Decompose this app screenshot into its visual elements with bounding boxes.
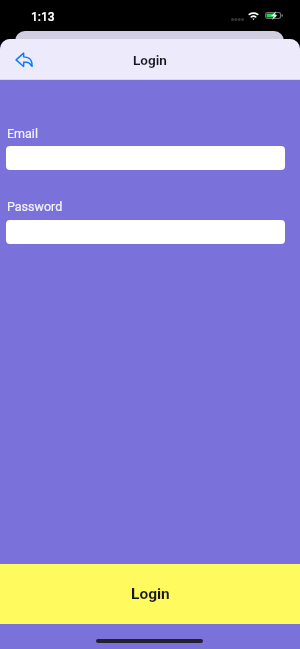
staticText: Email xyxy=(7,126,38,141)
button[interactable] xyxy=(6,220,285,244)
button[interactable]: Back xyxy=(9,45,39,75)
staticText: Login xyxy=(131,585,170,603)
staticText: 1:13 xyxy=(31,10,55,24)
button[interactable]: Login xyxy=(0,564,300,624)
staticText: Login xyxy=(133,52,167,68)
button[interactable] xyxy=(6,146,285,170)
staticText: Password xyxy=(7,199,63,214)
